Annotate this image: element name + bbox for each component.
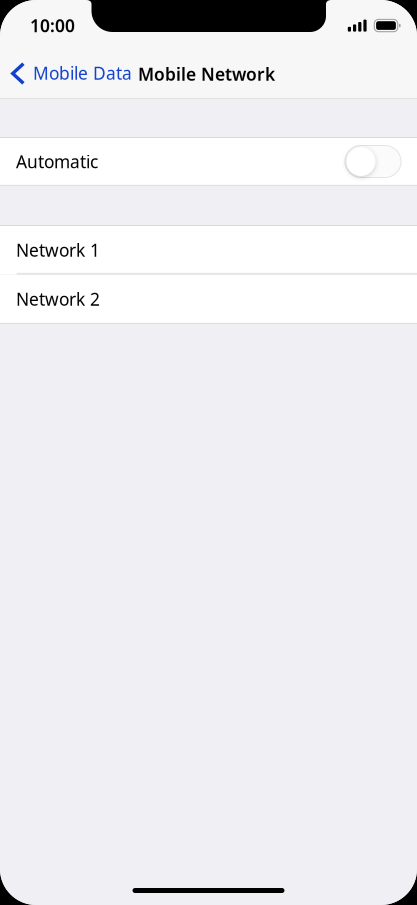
staticText: Mobile Network (138, 62, 275, 85)
staticText: 10:00 (30, 14, 75, 37)
button[interactable]: Network 1 (0, 226, 417, 274)
staticText: Automatic (16, 150, 98, 173)
button[interactable]: Automatic (0, 138, 417, 185)
staticText: Mobile Data (33, 61, 132, 84)
staticText: Network 1 (16, 238, 100, 261)
button[interactable]: Network 2 (0, 275, 417, 323)
button[interactable]: Back to Mobile Data (0, 51, 140, 95)
staticText: Network 2 (16, 287, 100, 310)
